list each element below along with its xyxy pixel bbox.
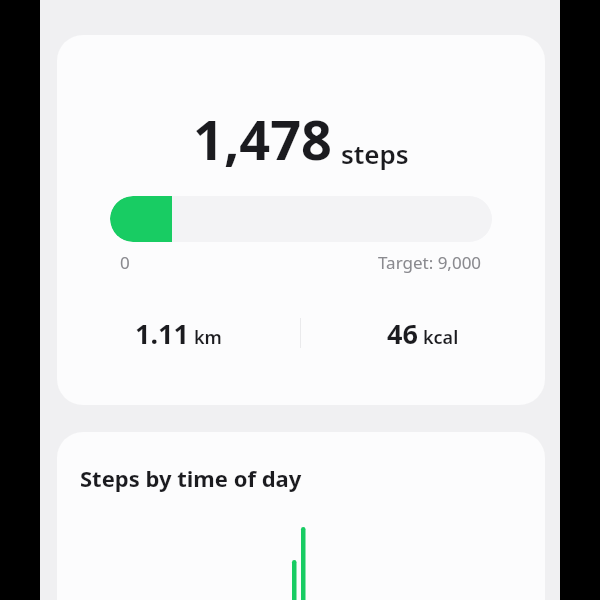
staticText: steps bbox=[341, 136, 409, 171]
staticText: Steps by time of day bbox=[80, 463, 302, 493]
staticText: Target: 9,000 bbox=[378, 251, 482, 274]
staticText: kcal bbox=[423, 325, 459, 350]
button[interactable]: 1.11 bbox=[57, 313, 300, 353]
staticText: 0 bbox=[120, 251, 130, 274]
button[interactable]: Steps by time of day bbox=[57, 432, 545, 600]
other: Steps by time of day chart bbox=[57, 502, 545, 600]
button[interactable]: 46 bbox=[301, 313, 545, 353]
staticText: 1,478 bbox=[193, 102, 332, 176]
staticText: 1.11 bbox=[135, 315, 189, 352]
staticText: 46 bbox=[387, 315, 418, 352]
staticText: km bbox=[194, 325, 222, 350]
button[interactable]: 1,478 bbox=[57, 35, 545, 405]
